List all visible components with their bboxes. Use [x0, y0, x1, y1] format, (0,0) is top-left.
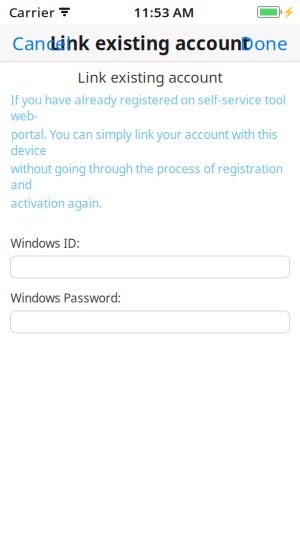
button[interactable]: Done: [228, 24, 300, 62]
staticText: Link existing account: [77, 67, 222, 87]
staticText: ⚡: [281, 6, 294, 18]
staticText: portal. You can simply link your account…: [10, 126, 277, 158]
staticText: Carrier: [9, 3, 55, 21]
staticText: Windows ID:: [10, 235, 79, 251]
button[interactable]: Text field: [10, 311, 289, 333]
staticText: without going through the process of reg…: [10, 161, 282, 193]
button[interactable]: Cancel: [0, 24, 83, 62]
staticText: Cancel: [12, 31, 71, 55]
staticText: activation again.: [10, 195, 101, 211]
staticText: Link existing account: [50, 31, 250, 55]
staticText: Done: [240, 31, 288, 55]
staticText: If you have already registered on self-s…: [10, 92, 285, 124]
staticText: 11:53 AM: [134, 3, 194, 21]
button[interactable]: Text field: [10, 256, 289, 278]
staticText: Windows Password:: [10, 290, 120, 306]
